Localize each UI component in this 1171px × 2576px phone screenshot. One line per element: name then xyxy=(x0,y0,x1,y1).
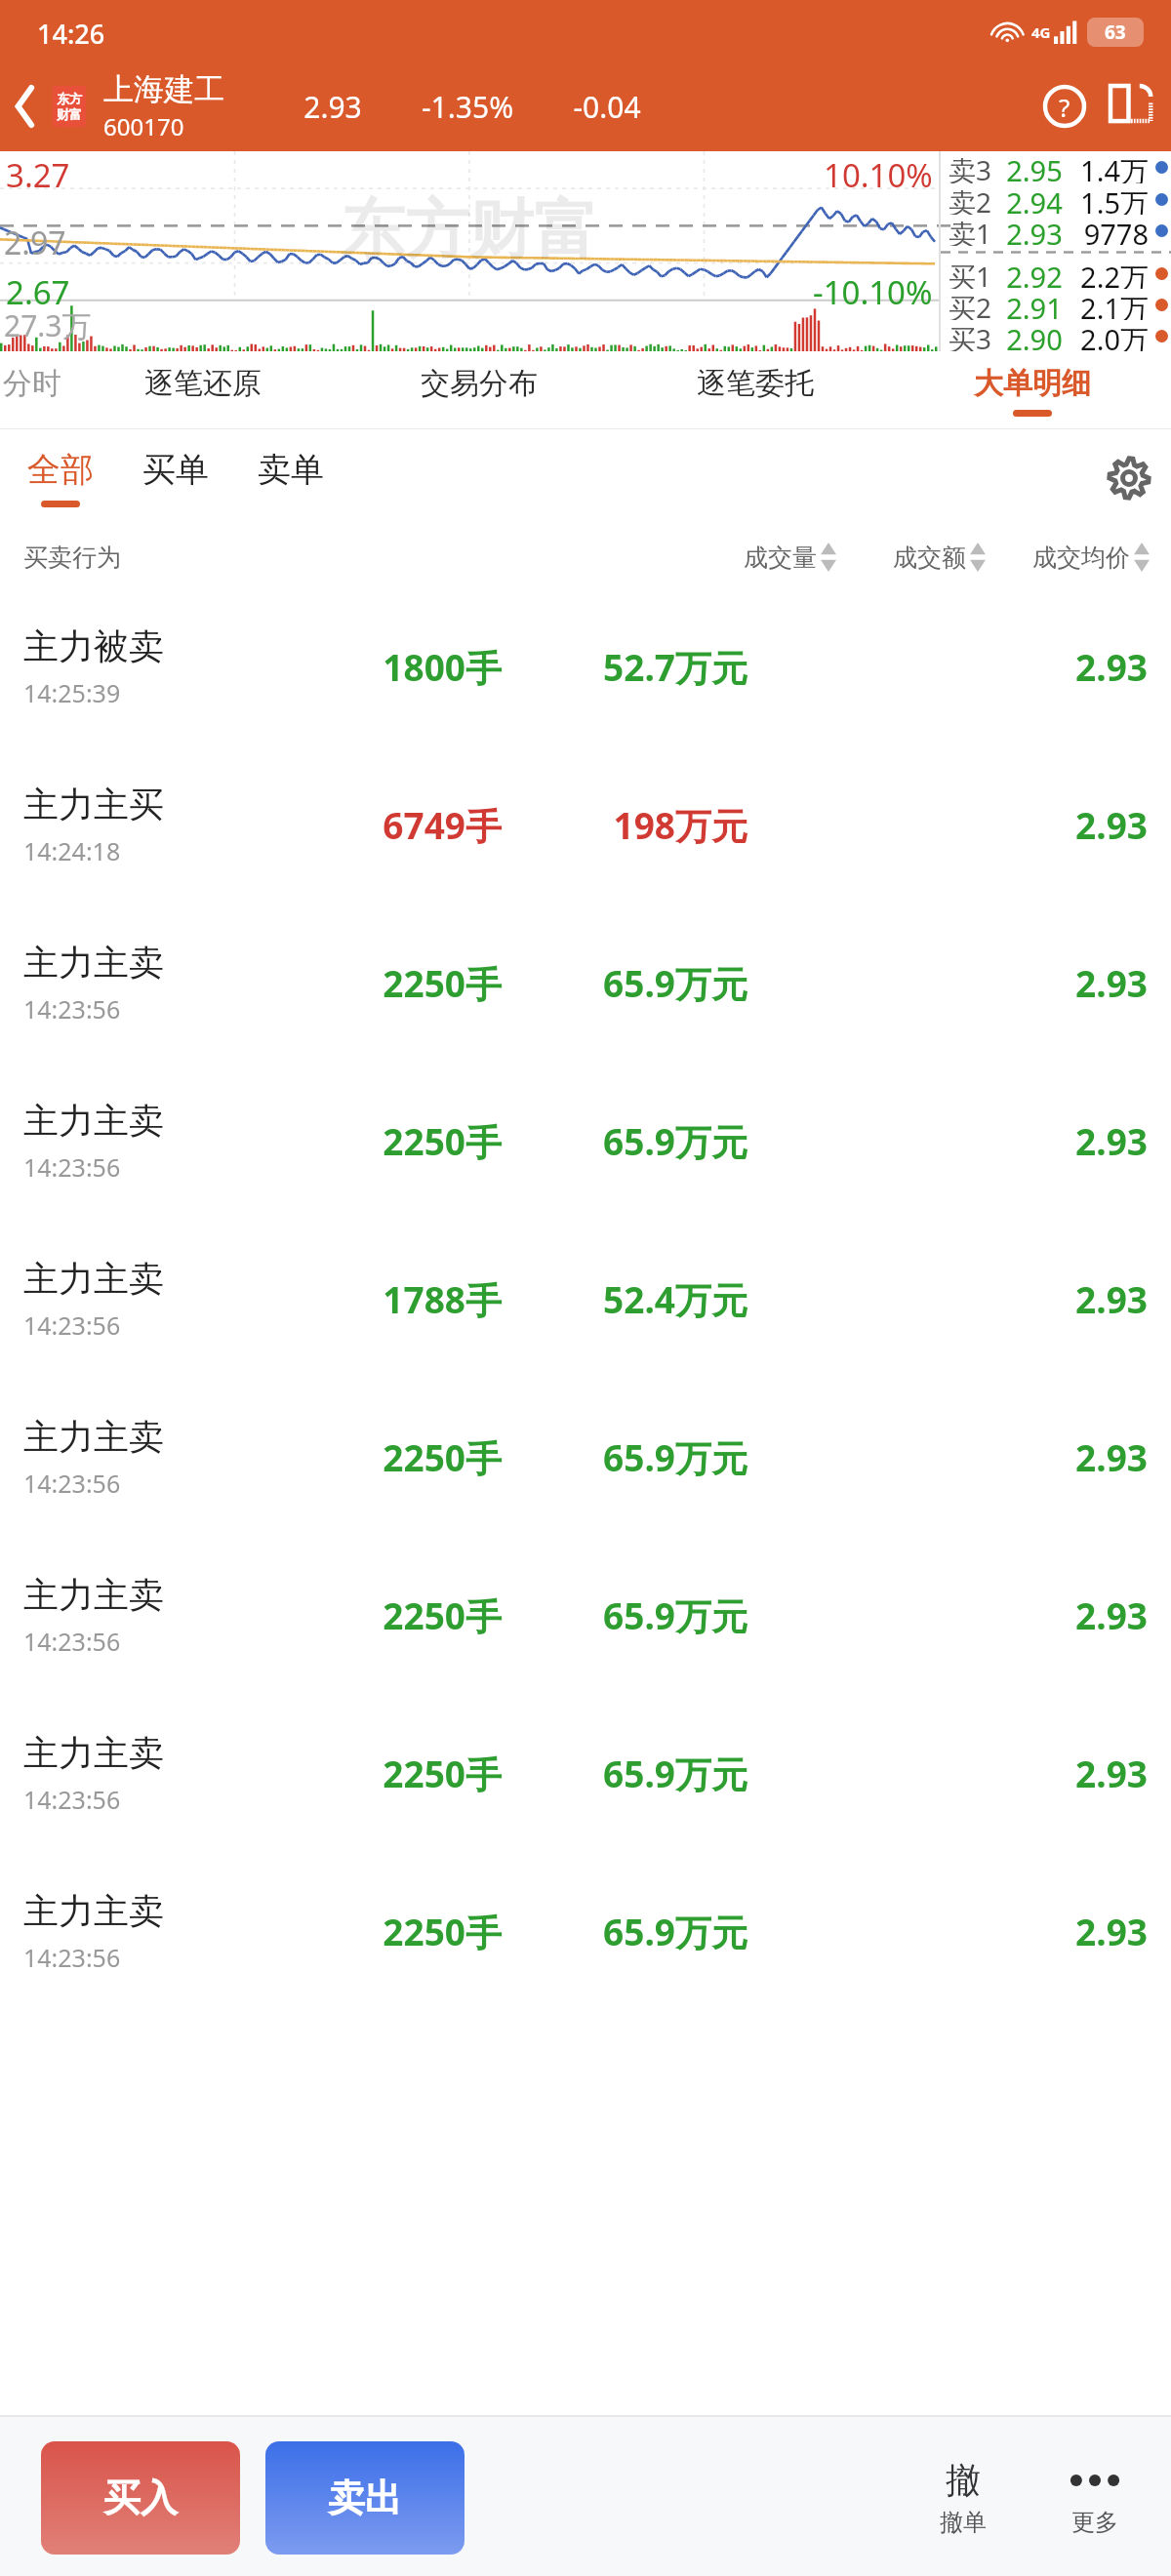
staticText: 2250手 xyxy=(297,1590,502,1640)
button[interactable]: 卖单 xyxy=(254,443,328,513)
button[interactable]: 主力主买 xyxy=(0,745,1171,904)
staticText: 买卖行为 xyxy=(23,543,121,573)
staticText: 2.93 xyxy=(1001,1590,1148,1639)
staticText: 卖出 xyxy=(328,2475,402,2521)
staticText: 成交量 xyxy=(744,543,817,573)
staticText: 主力主卖 xyxy=(23,1889,164,1933)
button[interactable]: 更多 xyxy=(1027,2419,1163,2576)
staticText: 2.93 xyxy=(1001,642,1148,691)
staticText: 2.91 xyxy=(992,289,1076,320)
button[interactable]: 卖出 xyxy=(265,2441,464,2555)
staticText: 1788手 xyxy=(297,1274,502,1324)
staticText: 2250手 xyxy=(297,1432,502,1482)
button[interactable]: 大单明细 xyxy=(894,351,1171,429)
button[interactable]: 卖3 xyxy=(941,151,1171,183)
staticText: 2.92 xyxy=(992,258,1076,289)
staticText: 买1 xyxy=(949,258,992,289)
button[interactable]: 卖2 xyxy=(941,183,1171,215)
button[interactable]: Settings xyxy=(1087,436,1171,520)
button[interactable]: 主力主卖 xyxy=(0,1694,1171,1852)
staticText: 65.9万元 xyxy=(515,1907,747,1956)
staticText: 卖1 xyxy=(949,215,992,246)
staticText: 65.9万元 xyxy=(515,1432,747,1482)
staticText: 主力主卖 xyxy=(23,1573,164,1617)
staticText: -0.04 xyxy=(545,87,669,127)
staticText: 14:23:56 xyxy=(23,1150,121,1184)
button[interactable]: 主力被卖 xyxy=(0,587,1171,745)
staticText: 65.9万元 xyxy=(515,1749,747,1798)
staticText: 52.4万元 xyxy=(515,1274,747,1324)
staticText: 主力主卖 xyxy=(23,941,164,985)
button[interactable]: 主力主卖 xyxy=(0,1852,1171,2010)
button[interactable]: 买3 xyxy=(941,320,1171,351)
staticText: 2.93 xyxy=(1001,958,1148,1007)
staticText: 2.1万 xyxy=(1076,289,1149,320)
staticText: 14:23:56 xyxy=(23,992,121,1026)
staticText: 2.93 xyxy=(1001,1116,1148,1165)
button[interactable]: 撤 xyxy=(900,2419,1027,2576)
staticText: ? xyxy=(1059,90,1070,124)
staticText: 14:26 xyxy=(37,16,105,52)
staticText: 主力主卖 xyxy=(23,1257,164,1301)
staticText: 逐笔还原 xyxy=(144,365,262,402)
button[interactable]: 主力主卖 xyxy=(0,1062,1171,1220)
staticText: 主力被卖 xyxy=(23,624,164,668)
staticText: 2.93 xyxy=(1001,1274,1148,1323)
staticText: -1.35% xyxy=(390,87,545,127)
staticText: 卖单 xyxy=(258,449,324,491)
staticText: 2.93 xyxy=(1001,1749,1148,1797)
button[interactable]: Share xyxy=(1097,72,1165,141)
button[interactable]: 买入 xyxy=(41,2441,240,2555)
staticText: 2250手 xyxy=(297,1116,502,1166)
staticText: 52.7万元 xyxy=(515,642,747,692)
staticText: 大单明细 xyxy=(974,365,1091,402)
button[interactable]: 逐笔还原 xyxy=(64,351,341,429)
staticText: 2.67 xyxy=(6,270,70,314)
button[interactable]: 分时 xyxy=(0,351,64,429)
staticText: 2.97 xyxy=(4,221,66,264)
staticText: 600170 xyxy=(103,110,184,142)
button[interactable]: 主力主卖 xyxy=(0,1378,1171,1536)
button[interactable]: 交易分布 xyxy=(341,351,617,429)
button[interactable]: 买2 xyxy=(941,289,1171,320)
button[interactable]: 逐笔委托 xyxy=(617,351,894,429)
staticText: 买入 xyxy=(103,2475,178,2521)
staticText: 65.9万元 xyxy=(515,958,747,1008)
staticText: 买单 xyxy=(142,449,209,491)
staticText: 2.94 xyxy=(992,183,1076,215)
staticText: 撤 xyxy=(946,2458,981,2502)
staticText: 2.0万 xyxy=(1076,320,1149,351)
staticText: 成交额 xyxy=(893,543,966,573)
staticText: 2.93 xyxy=(1001,800,1148,849)
staticText: 4G xyxy=(1031,22,1051,42)
button[interactable]: Back xyxy=(0,61,51,151)
staticText: 更多 xyxy=(1071,2508,1118,2537)
button[interactable]: 全部 xyxy=(23,443,98,513)
staticText: 2.93 xyxy=(1001,1432,1148,1481)
staticText: 分时 xyxy=(3,365,61,402)
staticText: 交易分布 xyxy=(421,365,538,402)
staticText: 主力主卖 xyxy=(23,1099,164,1143)
staticText: 买3 xyxy=(949,320,992,351)
staticText: 1800手 xyxy=(297,642,502,692)
button[interactable]: 主力主卖 xyxy=(0,1220,1171,1378)
staticText: 14:25:39 xyxy=(23,676,121,709)
staticText: 上海建工 xyxy=(103,70,224,108)
button[interactable]: 主力主卖 xyxy=(0,904,1171,1062)
staticText: 成交均价 xyxy=(1032,543,1130,573)
staticText: 财富 xyxy=(57,106,82,122)
staticText: 2.93 xyxy=(1001,1907,1148,1955)
button[interactable]: Help xyxy=(1032,74,1097,139)
staticText: 2.93 xyxy=(992,215,1076,246)
staticText: 6749手 xyxy=(297,800,502,850)
staticText: 63 xyxy=(1105,20,1126,45)
button[interactable]: 买1 xyxy=(941,258,1171,289)
staticText: 10.10% xyxy=(824,153,933,197)
button[interactable]: 买单 xyxy=(139,443,213,513)
staticText: 1.4万 xyxy=(1076,151,1149,183)
button[interactable]: 卖1 xyxy=(941,215,1171,246)
staticText: 2.2万 xyxy=(1076,258,1149,289)
staticText: 27.3万 xyxy=(4,305,92,345)
staticText: 14:24:18 xyxy=(23,834,121,867)
button[interactable]: 主力主卖 xyxy=(0,1536,1171,1694)
